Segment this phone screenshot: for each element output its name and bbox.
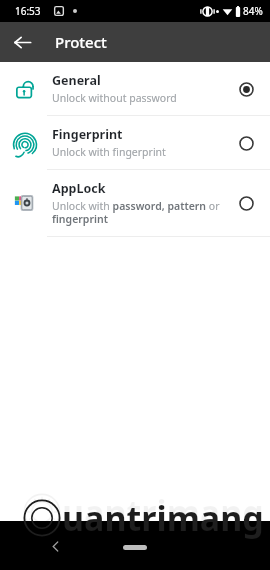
- button[interactable]: Selected: [234, 77, 258, 101]
- staticText: General: [52, 72, 101, 89]
- staticText: Fingerprint: [52, 126, 123, 143]
- staticText: Unlock without password: [52, 91, 177, 105]
- button[interactable]: Not selected: [234, 131, 258, 155]
- button[interactable]: General: [0, 62, 270, 116]
- staticText: 84%: [243, 4, 263, 18]
- staticText: 16:53: [15, 4, 41, 18]
- button[interactable]: AppLock: [0, 170, 270, 237]
- staticText: AppLock: [52, 180, 106, 197]
- button[interactable]: Not selected: [234, 191, 258, 215]
- staticText: Protect: [55, 32, 107, 52]
- button[interactable]: Back: [6, 26, 38, 58]
- staticText: Unlock with fingerprint: [52, 145, 166, 159]
- staticText: uantrimang: [62, 489, 264, 535]
- button[interactable]: Back: [42, 533, 68, 559]
- button[interactable]: Fingerprint: [0, 116, 270, 170]
- staticText: Unlock with password, pattern or fingerp…: [52, 199, 220, 226]
- staticText: uantrimang: [62, 495, 264, 541]
- button[interactable]: Home: [123, 545, 147, 550]
